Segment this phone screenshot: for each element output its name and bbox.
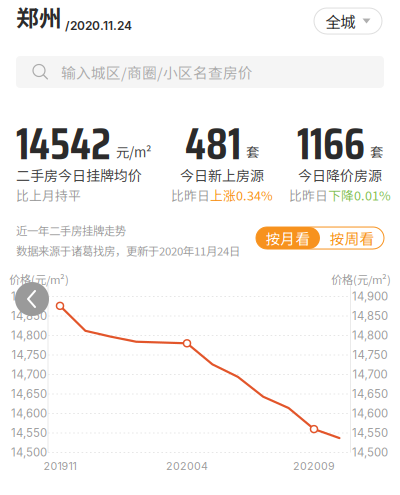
staticText: 比昨日 [171,186,210,204]
staticText: 14,850 [11,309,47,323]
staticText: 比昨日 [289,186,328,204]
staticText: 14,800 [352,329,388,342]
staticText: /2020.11.24 [65,18,132,33]
staticText: 14,600 [352,407,388,420]
staticText: 全城 [325,10,355,32]
staticText: 14,550 [352,426,388,440]
button[interactable]: 输入城区/商圈/小区名查房价 [16,56,384,88]
staticText: 下降0.01% [328,186,391,204]
staticText: 14,900 [352,290,388,303]
staticText: 价格(元/m²) [9,271,69,287]
staticText: 数据来源于诸葛找房，更新于2020年11月24日 [16,242,240,259]
staticText: 14,850 [352,309,388,323]
button[interactable]: 全城 [314,8,382,34]
staticText: 14,600 [11,407,47,420]
staticText: 按周看 [329,227,374,249]
staticText: 481 [185,109,241,179]
staticText: 输入城区/商圈/小区名查房价 [61,61,253,83]
staticText: 今日降价房源 [298,165,382,185]
staticText: 比上月持平 [16,186,81,204]
staticText: 14,700 [352,368,387,381]
staticText: 14,650 [352,387,388,401]
staticText: 14,650 [11,387,47,401]
staticText: 201911 [43,459,76,472]
staticText: 郑州 [16,0,62,33]
staticText: 上涨0.34% [210,186,273,204]
staticText: 二手房今日挂牌均价 [16,165,142,185]
staticText: 元/m² [116,142,151,161]
staticText: 价格(元/m²) [331,271,391,287]
staticText: 1166 [297,109,365,179]
staticText: 按月看 [265,227,310,249]
staticText: 202004 [166,459,208,472]
button[interactable]: Back [15,282,49,316]
staticText: 202009 [293,459,335,472]
staticText: 套 [246,142,259,161]
button[interactable]: 按月看 [256,227,320,249]
staticText: 14542 [16,109,111,179]
staticText: 近一年二手房挂牌走势 [16,222,126,238]
staticText: 14,750 [352,348,387,362]
staticText: 14,500 [11,446,47,459]
staticText: 14,550 [11,426,47,440]
staticText: 14,700 [11,368,46,381]
staticText: 套 [370,142,383,161]
staticText: 14,800 [11,329,47,342]
staticText: 14,750 [11,348,46,362]
staticText: 14,500 [352,446,388,459]
staticText: 14,900 [11,290,47,303]
staticText: 今日新上房源 [180,165,264,185]
button[interactable]: 按周看 [320,227,384,249]
